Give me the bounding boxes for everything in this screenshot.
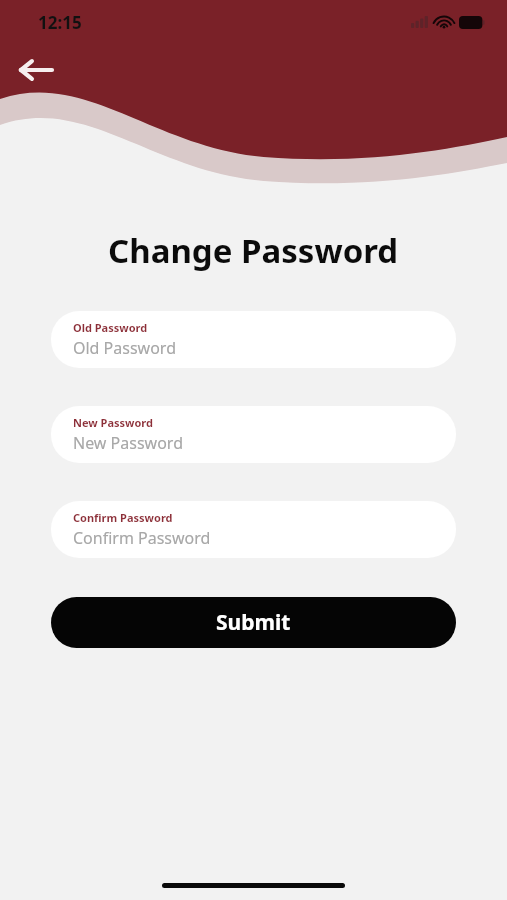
- staticText: Submit: [216, 608, 291, 637]
- button[interactable]: Old Password: [51, 311, 456, 368]
- button[interactable]: Back: [10, 44, 62, 96]
- staticText: Change Password: [108, 228, 399, 273]
- button[interactable]: Submit: [51, 597, 456, 648]
- staticText: 12:15: [38, 11, 82, 34]
- staticText: Confirm Password: [73, 527, 211, 549]
- button[interactable]: New Password: [51, 406, 456, 463]
- staticText: Confirm Password: [73, 510, 173, 525]
- staticText: Old Password: [73, 337, 176, 359]
- staticText: New Password: [73, 415, 153, 430]
- staticText: Old Password: [73, 320, 148, 335]
- button[interactable]: Confirm Password: [51, 501, 456, 558]
- staticText: New Password: [73, 432, 183, 454]
